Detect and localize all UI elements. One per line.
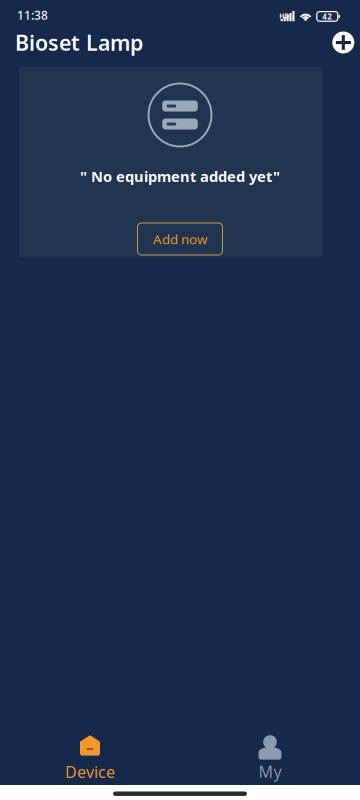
staticText: HD <box>279 11 289 20</box>
button[interactable]: Add device <box>322 27 360 58</box>
staticText: 11:38 <box>17 7 48 23</box>
staticText: " No equipment added yet" <box>80 166 280 186</box>
staticText: Device <box>65 761 115 782</box>
button[interactable]: My <box>180 735 360 785</box>
staticText: Bioset Lamp <box>15 28 143 57</box>
button[interactable]: Add now <box>137 223 222 255</box>
staticText: My <box>258 761 281 782</box>
staticText: Add now <box>153 230 207 248</box>
button[interactable]: Device <box>0 735 180 785</box>
staticText: 42 <box>322 11 332 22</box>
